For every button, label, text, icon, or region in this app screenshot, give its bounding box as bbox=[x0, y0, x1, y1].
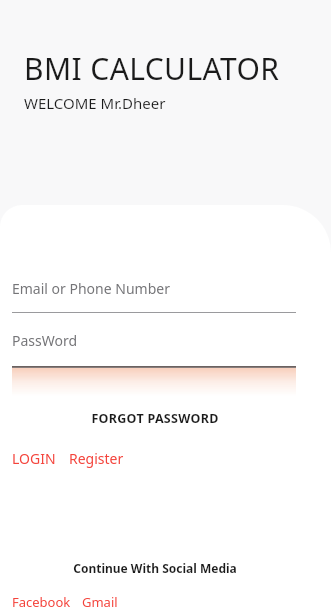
staticText: LOGIN bbox=[12, 449, 56, 468]
button[interactable]: Facebook bbox=[12, 593, 71, 611]
staticText: Continue With Social Media bbox=[73, 560, 237, 576]
staticText: Gmail bbox=[82, 593, 118, 611]
staticText: Register bbox=[69, 449, 124, 468]
button[interactable]: Email or Phone Number bbox=[0, 279, 331, 313]
staticText: BMI CALCULATOR bbox=[24, 48, 280, 89]
staticText: WELCOME Mr.Dheer bbox=[24, 93, 166, 113]
button[interactable]: Register bbox=[69, 449, 124, 468]
button[interactable]: FORGOT PASSWORD bbox=[0, 410, 309, 427]
staticText: Email or Phone Number bbox=[12, 279, 170, 298]
button[interactable]: PassWord bbox=[0, 331, 331, 398]
staticText: FORGOT PASSWORD bbox=[91, 410, 219, 427]
button[interactable]: Gmail bbox=[82, 593, 118, 611]
staticText: PassWord bbox=[12, 331, 78, 350]
button[interactable]: LOGIN bbox=[12, 449, 56, 468]
staticText: Facebook bbox=[12, 593, 71, 611]
